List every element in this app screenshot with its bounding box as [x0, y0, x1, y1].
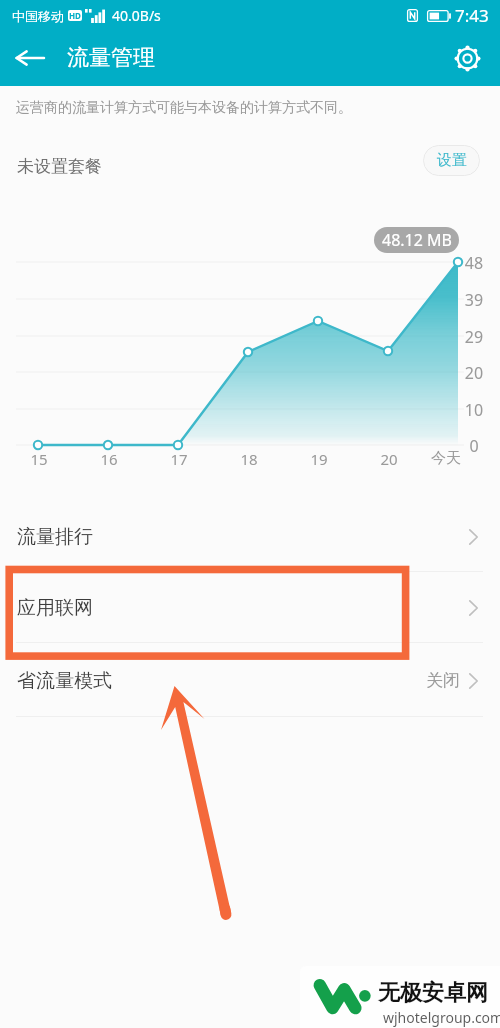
staticText: 18	[224, 449, 274, 469]
button[interactable]: 流量排行	[0, 502, 500, 572]
staticText: 0	[449, 435, 499, 457]
staticText: 7:43	[455, 4, 489, 27]
staticText: HD	[69, 10, 81, 21]
staticText: 15	[14, 449, 64, 469]
staticText: 应用联网	[17, 596, 93, 620]
button[interactable]: Settings	[443, 34, 491, 82]
staticText: 39	[449, 289, 499, 311]
staticText: 流量管理	[67, 44, 155, 72]
staticText: 今天	[421, 449, 471, 468]
staticText: 省流量模式	[17, 669, 112, 693]
staticText: 无极安卓网	[378, 979, 488, 1007]
button[interactable]: Back	[5, 33, 55, 83]
staticText: 中国移动	[12, 8, 64, 24]
button[interactable]: 设置	[423, 145, 480, 176]
staticText: 29	[449, 326, 499, 348]
button[interactable]: 应用联网	[0, 573, 500, 643]
staticText: 20	[364, 449, 414, 469]
staticText: 10	[449, 399, 499, 421]
staticText: 19	[294, 449, 344, 469]
staticText: 20	[449, 362, 499, 384]
staticText: wjhotelgroup.com	[383, 1008, 500, 1027]
staticText: 40.0B/s	[112, 6, 161, 25]
staticText: 17	[154, 449, 204, 469]
staticText: 设置	[437, 151, 467, 170]
staticText: 关闭	[426, 670, 460, 691]
staticText: 48	[449, 252, 499, 274]
button[interactable]: 省流量模式	[0, 644, 500, 717]
staticText: 流量排行	[17, 525, 93, 549]
staticText: 48.12 MB	[382, 229, 452, 251]
staticText: 运营商的流量计算方式可能与本设备的计算方式不同。	[16, 99, 352, 117]
staticText: 未设置套餐	[17, 156, 102, 177]
staticText: 16	[84, 449, 134, 469]
